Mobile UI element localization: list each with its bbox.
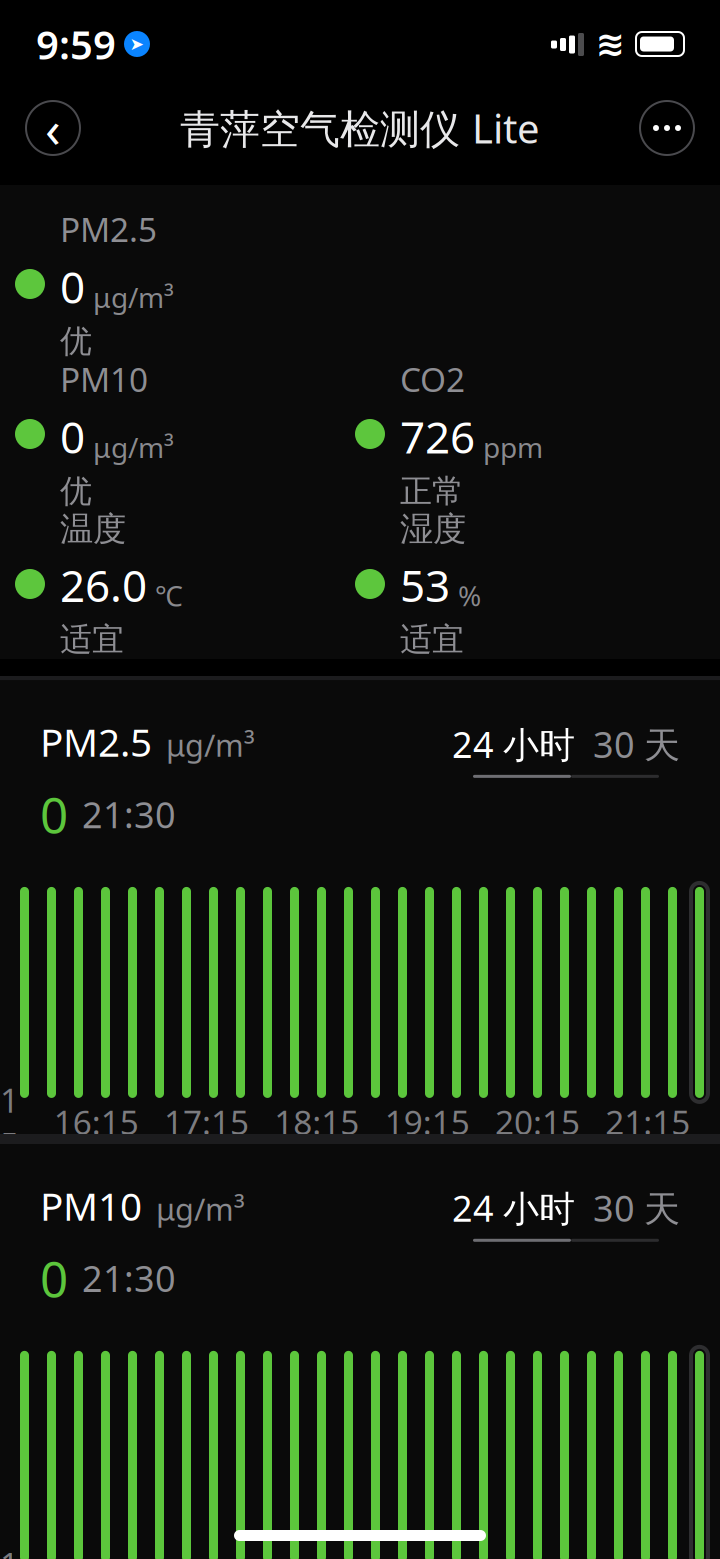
- staticText: 优: [60, 322, 92, 361]
- staticText: 30 天: [593, 1184, 680, 1232]
- staticText: 20:15: [495, 1100, 580, 1144]
- staticText: 0: [40, 1245, 68, 1311]
- staticText: 适宜: [60, 620, 124, 659]
- staticText: μg/m³: [93, 428, 174, 466]
- staticText: ppm: [483, 428, 543, 466]
- staticText: 17:15: [164, 1100, 249, 1144]
- staticText: 正常: [400, 472, 464, 511]
- staticText: 0: [60, 407, 85, 466]
- staticText: PM2.5: [40, 716, 152, 767]
- staticText: 53: [400, 556, 450, 614]
- staticText: 0: [40, 781, 68, 847]
- button[interactable]: PM2.5: [0, 207, 340, 361]
- button[interactable]: 24 小时: [452, 1184, 575, 1232]
- staticText: 19:15: [385, 1100, 470, 1144]
- staticText: 26.0: [60, 556, 147, 614]
- staticText: CO2: [400, 357, 465, 401]
- button[interactable]: Back: [26, 101, 80, 155]
- staticText: 适宜: [400, 620, 464, 659]
- button[interactable]: 湿度: [340, 509, 680, 659]
- staticText: 18:15: [274, 1100, 359, 1144]
- button[interactable]: More options: [640, 101, 694, 155]
- button[interactable]: PM10: [0, 357, 340, 511]
- button[interactable]: 温度: [0, 509, 340, 659]
- staticText: 21:30: [82, 790, 176, 838]
- staticText: μg/m³: [93, 278, 174, 316]
- staticText: 青萍空气检测仪 Lite: [180, 101, 540, 154]
- staticText: ℃: [155, 577, 183, 614]
- staticText: 15: [0, 1078, 19, 1166]
- staticText: PM10: [40, 1180, 142, 1231]
- staticText: 16:15: [54, 1100, 139, 1144]
- staticText: 21:15: [605, 1100, 690, 1144]
- staticText: 湿度: [400, 509, 466, 550]
- staticText: μg/m³: [156, 1188, 245, 1229]
- staticText: 优: [60, 472, 92, 511]
- staticText: 726: [400, 407, 475, 466]
- staticText: 温度: [60, 509, 126, 550]
- staticText: 24 小时: [452, 1184, 575, 1232]
- staticText: 0: [60, 257, 85, 316]
- staticText: 21:30: [82, 1254, 176, 1302]
- button[interactable]: 24 小时: [452, 720, 575, 768]
- staticText: PM2.5: [60, 207, 157, 251]
- staticText: ≋: [595, 24, 624, 64]
- staticText: 30 天: [593, 720, 680, 768]
- staticText: ➤: [129, 34, 144, 54]
- staticText: ‹: [45, 94, 61, 162]
- staticText: PM10: [60, 357, 148, 401]
- staticText: %: [458, 577, 481, 614]
- button[interactable]: 30 天: [593, 1184, 680, 1232]
- button[interactable]: CO2: [340, 357, 680, 511]
- staticText: 9:59: [36, 17, 116, 70]
- staticText: μg/m³: [166, 724, 255, 765]
- staticText: 15: [0, 1542, 19, 1559]
- button[interactable]: 30 天: [593, 720, 680, 768]
- staticText: 24 小时: [452, 720, 575, 768]
